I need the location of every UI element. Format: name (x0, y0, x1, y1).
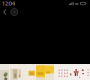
button[interactable]: Account (9, 7, 19, 17)
button[interactable]: Sketch artwork (18, 64, 27, 80)
button[interactable]: Pattern artwork (81, 64, 90, 80)
button[interactable]: Pattern artwork (54, 64, 63, 80)
button[interactable]: Figure artwork (72, 64, 81, 80)
button[interactable]: Back (0, 7, 9, 17)
button[interactable]: Gold artwork (36, 64, 45, 80)
button[interactable]: Pattern artwork (63, 64, 72, 80)
button[interactable]: Gold artwork (27, 64, 36, 80)
staticText: 12:04 (2, 0, 15, 7)
button[interactable]: Interior artwork (9, 64, 18, 80)
button[interactable]: Gold artwork (45, 64, 54, 80)
button[interactable]: Plant artwork (0, 64, 9, 80)
